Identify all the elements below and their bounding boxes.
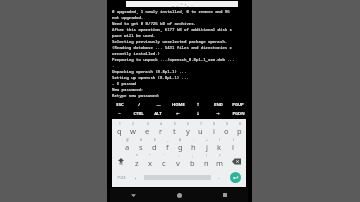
staticText: m xyxy=(216,158,224,168)
button[interactable]: ?123 xyxy=(112,169,130,185)
button[interactable]: ~ xyxy=(110,109,129,118)
staticText: Selecting previously unselected package … xyxy=(112,39,248,44)
staticText: y xyxy=(186,126,190,136)
staticText: not upgraded. xyxy=(112,15,248,20)
button[interactable]: + xyxy=(200,137,213,153)
staticText: @ xyxy=(126,138,129,142)
button[interactable]: 3 xyxy=(140,121,154,137)
button[interactable]: 1 xyxy=(112,121,126,137)
staticText: . xyxy=(218,173,220,181)
button[interactable]: ↓ xyxy=(188,109,208,118)
button[interactable]: ↑ xyxy=(188,100,208,109)
button[interactable]: CTRL xyxy=(129,109,148,118)
button[interactable]: ( xyxy=(213,137,226,153)
button[interactable]: ! xyxy=(199,153,213,169)
button[interactable]: , xyxy=(130,169,142,185)
staticText: n xyxy=(204,158,209,168)
button[interactable]: : xyxy=(171,153,185,169)
button[interactable]: * xyxy=(130,153,143,169)
staticText: END xyxy=(214,102,223,108)
button[interactable]: _ xyxy=(161,137,174,153)
staticText: ESC xyxy=(116,102,124,108)
button[interactable]: 5 xyxy=(168,121,181,137)
button[interactable]: PGUP xyxy=(228,100,248,109)
button[interactable]: ← xyxy=(168,109,188,118)
button[interactable]: " xyxy=(143,153,157,169)
button[interactable]: 0 xyxy=(233,121,246,137)
button[interactable]: / xyxy=(129,100,148,109)
button[interactable]: ' xyxy=(157,153,171,169)
button[interactable]: → xyxy=(208,109,228,118)
staticText: ' xyxy=(164,154,165,158)
staticText: k xyxy=(217,142,222,152)
button[interactable]: HOME xyxy=(168,100,188,109)
button[interactable]: . xyxy=(213,169,225,185)
staticText: PGUP xyxy=(232,102,244,108)
staticText: g xyxy=(178,142,183,152)
staticText: ; xyxy=(192,154,193,158)
button[interactable]: 2 xyxy=(126,121,140,137)
button[interactable]: _ _ ^ >_ - xyxy=(126,1,238,7)
button[interactable]: @ xyxy=(120,137,134,153)
button[interactable]: 8 xyxy=(207,121,220,137)
button[interactable]: END xyxy=(208,100,228,109)
button[interactable]: ; xyxy=(185,153,199,169)
staticText: ) xyxy=(233,138,234,142)
button[interactable]: ) xyxy=(226,137,239,153)
button[interactable]: Back xyxy=(110,188,156,202)
staticText: h xyxy=(191,142,196,152)
button[interactable]: Enter xyxy=(230,172,241,183)
staticText: ! xyxy=(206,154,207,158)
button[interactable]: 6 xyxy=(181,121,194,137)
button[interactable]: Shift xyxy=(112,153,130,169)
staticText: 7 xyxy=(200,122,202,126)
staticText: & xyxy=(179,138,182,142)
button[interactable]: Recents xyxy=(202,188,248,202)
staticText: w xyxy=(130,126,136,136)
staticText: _ _ ^ >_ - xyxy=(172,2,193,7)
button[interactable]: $ xyxy=(148,137,161,153)
staticText: ~ xyxy=(118,111,121,117)
staticText: u xyxy=(198,126,203,136)
staticText: After this operation, 6177 kB of additio… xyxy=(112,27,248,32)
button[interactable]: 9 xyxy=(220,121,233,137)
button[interactable]: - xyxy=(187,137,200,153)
staticText: r xyxy=(159,126,163,136)
staticText: c xyxy=(162,158,166,168)
staticText: ? xyxy=(219,154,221,158)
staticText: # xyxy=(140,138,143,142)
staticText: $ xyxy=(154,138,156,142)
staticText: ↓ xyxy=(196,111,200,116)
button[interactable]: — xyxy=(148,100,168,109)
staticText: o xyxy=(224,126,229,136)
staticText: 3 xyxy=(147,122,149,126)
staticText: e xyxy=(145,126,150,136)
button[interactable]: ALT xyxy=(148,109,168,118)
staticText: l xyxy=(232,142,234,152)
button[interactable]: Home xyxy=(156,188,202,202)
button[interactable]: ? xyxy=(213,153,227,169)
staticText: , xyxy=(135,173,137,181)
button[interactable]: ESC xyxy=(110,100,129,109)
staticText: x xyxy=(148,158,152,168)
staticText: z xyxy=(135,158,139,168)
staticText: HOME xyxy=(172,102,185,108)
staticText: - xyxy=(193,138,195,142)
staticText: Need to get 0 B/726 kB of archives. xyxy=(112,21,248,26)
staticText: 9 xyxy=(226,122,228,126)
staticText: ?123 xyxy=(117,175,126,180)
staticText: CTRL xyxy=(133,111,144,117)
staticText: ← xyxy=(176,111,180,116)
button[interactable]: # xyxy=(134,137,148,153)
button[interactable]: 7 xyxy=(194,121,207,137)
staticText: pace will be used. xyxy=(112,33,248,38)
staticText: PGDN xyxy=(232,111,245,117)
button[interactable]: & xyxy=(174,137,187,153)
staticText: t xyxy=(173,126,176,136)
button[interactable]: PGDN xyxy=(228,109,248,118)
button[interactable]: Backspace xyxy=(227,153,246,169)
button[interactable]: 4 xyxy=(154,121,168,137)
staticText: (Reading database ... 5431 files and dir… xyxy=(112,45,248,50)
staticText: ( xyxy=(219,138,220,142)
